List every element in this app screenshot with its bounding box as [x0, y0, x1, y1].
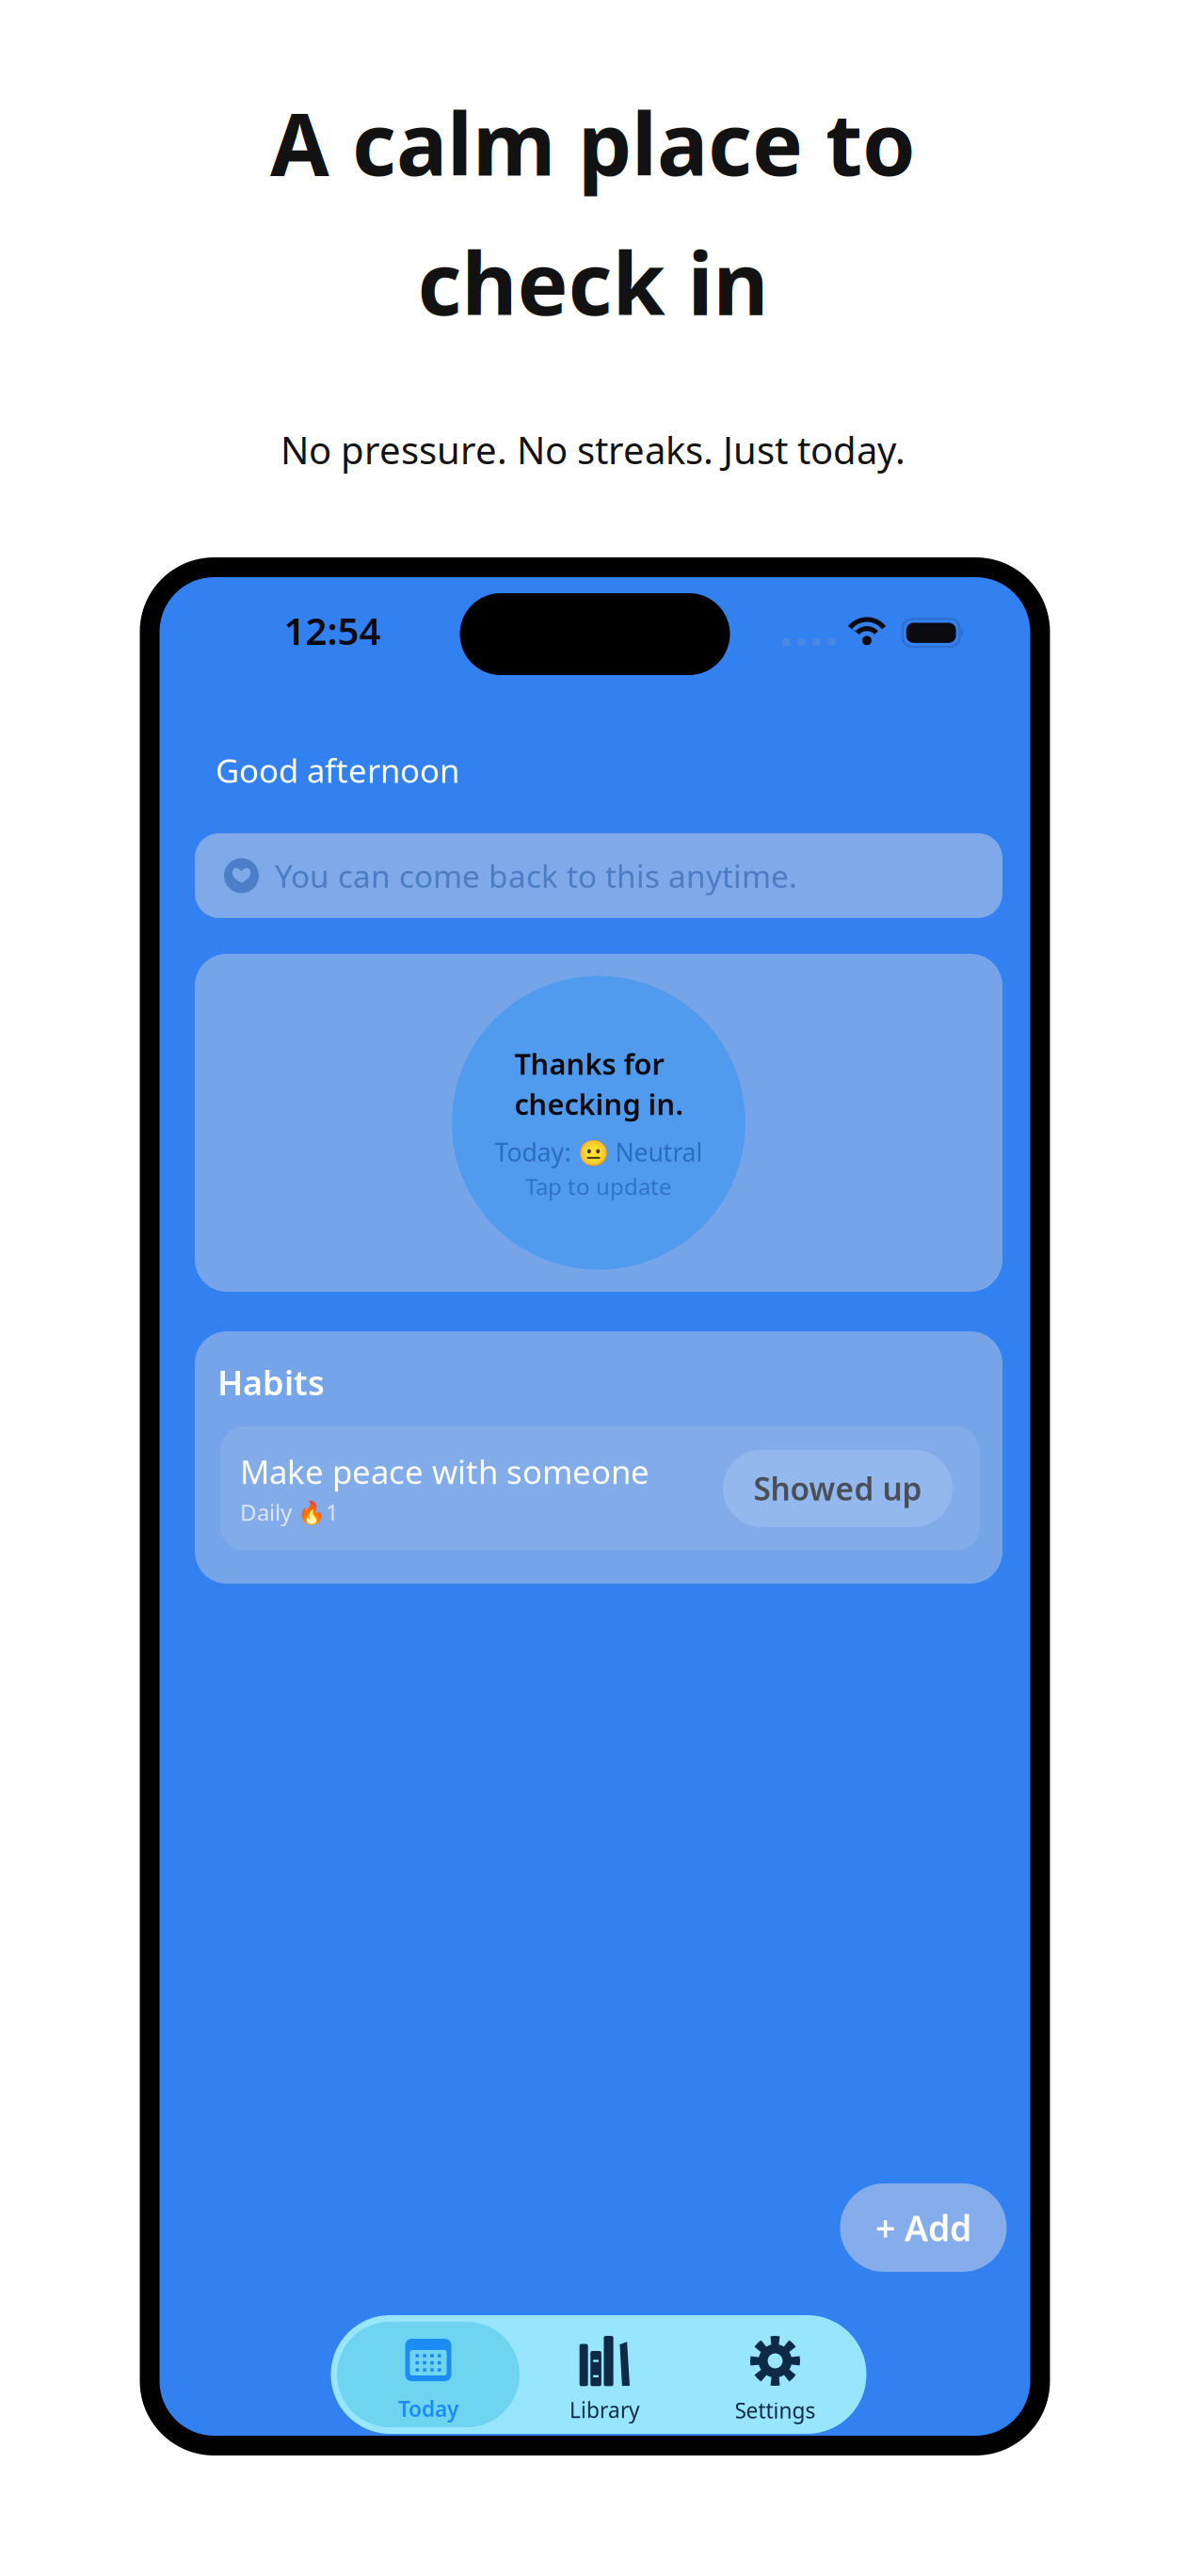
staticText: No pressure. No streaks. Just today.: [280, 424, 906, 474]
button[interactable]: You can come back to this anytime.: [195, 833, 1002, 918]
button[interactable]: Thanks for: [195, 954, 1002, 1292]
staticText: You can come back to this anytime.: [275, 855, 797, 897]
staticText: Today: 😐 Neutral: [495, 1135, 703, 1168]
staticText: 12:54: [284, 605, 381, 655]
staticText: Showed up: [753, 1468, 922, 1509]
button[interactable]: Today: [337, 2322, 520, 2427]
staticText: Library: [569, 2396, 640, 2424]
button[interactable]: + Add: [840, 2183, 1007, 2272]
staticText: Settings: [735, 2396, 816, 2425]
staticText: + Add: [875, 2204, 971, 2251]
button[interactable]: Make peace with someone: [220, 1426, 980, 1550]
staticText: Habits: [217, 1360, 325, 1405]
staticText: Today: [398, 2394, 458, 2423]
staticText: Thanks for: [514, 1044, 664, 1083]
staticText: Tap to update: [525, 1171, 672, 1201]
button[interactable]: Library: [520, 2322, 690, 2427]
staticText: checking in.: [514, 1085, 683, 1123]
staticText: Good afternoon: [216, 749, 459, 792]
button[interactable]: Settings: [690, 2322, 860, 2427]
staticText: Daily 🔥1: [240, 1497, 339, 1527]
staticText: A calm place to: [270, 86, 916, 199]
staticText: Make peace with someone: [240, 1450, 649, 1493]
staticText: check in: [417, 225, 769, 339]
